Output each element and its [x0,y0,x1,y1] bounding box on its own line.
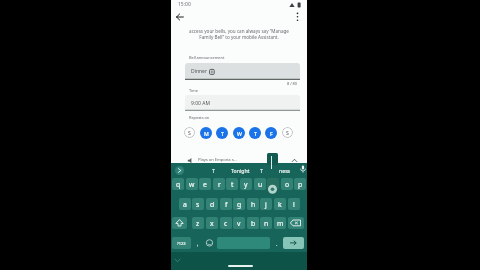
staticText: y [244,180,248,189]
button[interactable] [283,237,304,249]
staticText: z [196,219,200,228]
button[interactable]: n [260,217,272,229]
button[interactable] [204,237,215,249]
button[interactable]: m [274,217,286,229]
staticText: , [197,240,199,247]
button[interactable] [288,217,304,229]
staticText: c [224,219,228,228]
button[interactable]: b [247,217,259,229]
button[interactable]: t [226,178,238,190]
staticText: Dinner [191,68,208,75]
staticText: j [265,200,267,209]
staticText: Time [189,88,198,93]
staticText: Bell announcement [189,55,225,60]
staticText: W [237,130,242,137]
button[interactable]: y [240,178,252,190]
staticText: T [254,130,257,137]
button[interactable]: v [233,217,245,229]
button[interactable] [173,10,187,24]
button[interactable]: T [216,127,228,139]
button[interactable]: x [206,217,218,229]
staticText: 8 / 80 [287,81,297,86]
button[interactable]: l [288,198,300,210]
button[interactable]: M [200,127,212,139]
button[interactable]: 9:00 AM [185,95,300,111]
staticText: a [183,200,187,209]
button[interactable]: W [233,127,245,139]
button[interactable]: T [204,165,222,175]
staticText: b [251,219,256,228]
button[interactable]: c [220,217,232,229]
staticText: t [231,180,234,189]
staticText: Tonight [231,167,250,174]
staticText: u [258,180,263,189]
staticText: Repeats on [189,115,210,120]
staticText: d [210,200,215,209]
button[interactable]: a [179,198,191,210]
button[interactable]: T [257,165,265,175]
button[interactable]: e [199,178,211,190]
staticText: T [212,167,215,174]
button[interactable]: s [192,198,204,210]
staticText: r [218,180,221,189]
button[interactable]: S [282,127,293,138]
staticText: g [237,200,242,209]
staticText: . [276,240,278,247]
staticText: f [225,200,228,209]
staticText: s [196,200,200,209]
staticText: T [260,167,263,174]
button[interactable]: T [249,127,261,139]
staticText: ?123 [177,241,186,246]
button[interactable]: h [247,198,259,210]
button[interactable]: Tonight [227,165,253,175]
button[interactable]: , [193,237,202,249]
staticText: S [286,129,289,136]
button[interactable] [267,178,279,190]
staticText: T [221,130,224,137]
staticText: v [237,219,241,228]
staticText: x [210,219,214,228]
button[interactable]: u [254,178,266,190]
staticText: M [204,130,209,137]
button[interactable] [291,10,304,24]
staticText: S [188,129,191,136]
staticText: h [251,200,256,209]
button[interactable]: p [294,178,306,190]
button[interactable]: Plays on Emporia s... [185,155,307,164]
staticText: p [298,180,303,189]
staticText: k [278,200,282,209]
button[interactable] [172,217,187,229]
button[interactable]: Dinner [185,63,300,80]
staticText: n [264,219,269,228]
staticText: access your bells, you can always say “M… [189,28,289,41]
staticText: 15:00 [178,1,191,8]
button[interactable]: . [272,237,281,249]
staticText: F [270,130,273,137]
staticText: Plays on Emporia s... [198,157,237,163]
staticText: m [277,219,284,228]
staticText: ness [279,167,291,174]
button[interactable]: F [265,127,277,139]
button[interactable]: q [172,178,184,190]
staticText: l [293,200,295,209]
button[interactable]: f [220,198,232,210]
staticText: e [203,180,207,189]
button[interactable]: z [192,217,204,229]
button[interactable]: g [233,198,245,210]
staticText: q [176,180,181,189]
button[interactable]: ?123 [172,237,191,249]
button[interactable]: d [206,198,218,210]
button[interactable]: r [213,178,225,190]
button[interactable]: ness [277,165,293,175]
button[interactable]: w [186,178,198,190]
staticText: w [189,180,195,189]
staticText: o [285,180,290,189]
button[interactable] [299,164,307,175]
button[interactable]: S [184,127,195,138]
button[interactable] [175,166,184,175]
button[interactable]: o [281,178,293,190]
staticText: 9:00 AM [191,100,210,107]
button[interactable]: j [260,198,272,210]
button[interactable]: k [274,198,286,210]
